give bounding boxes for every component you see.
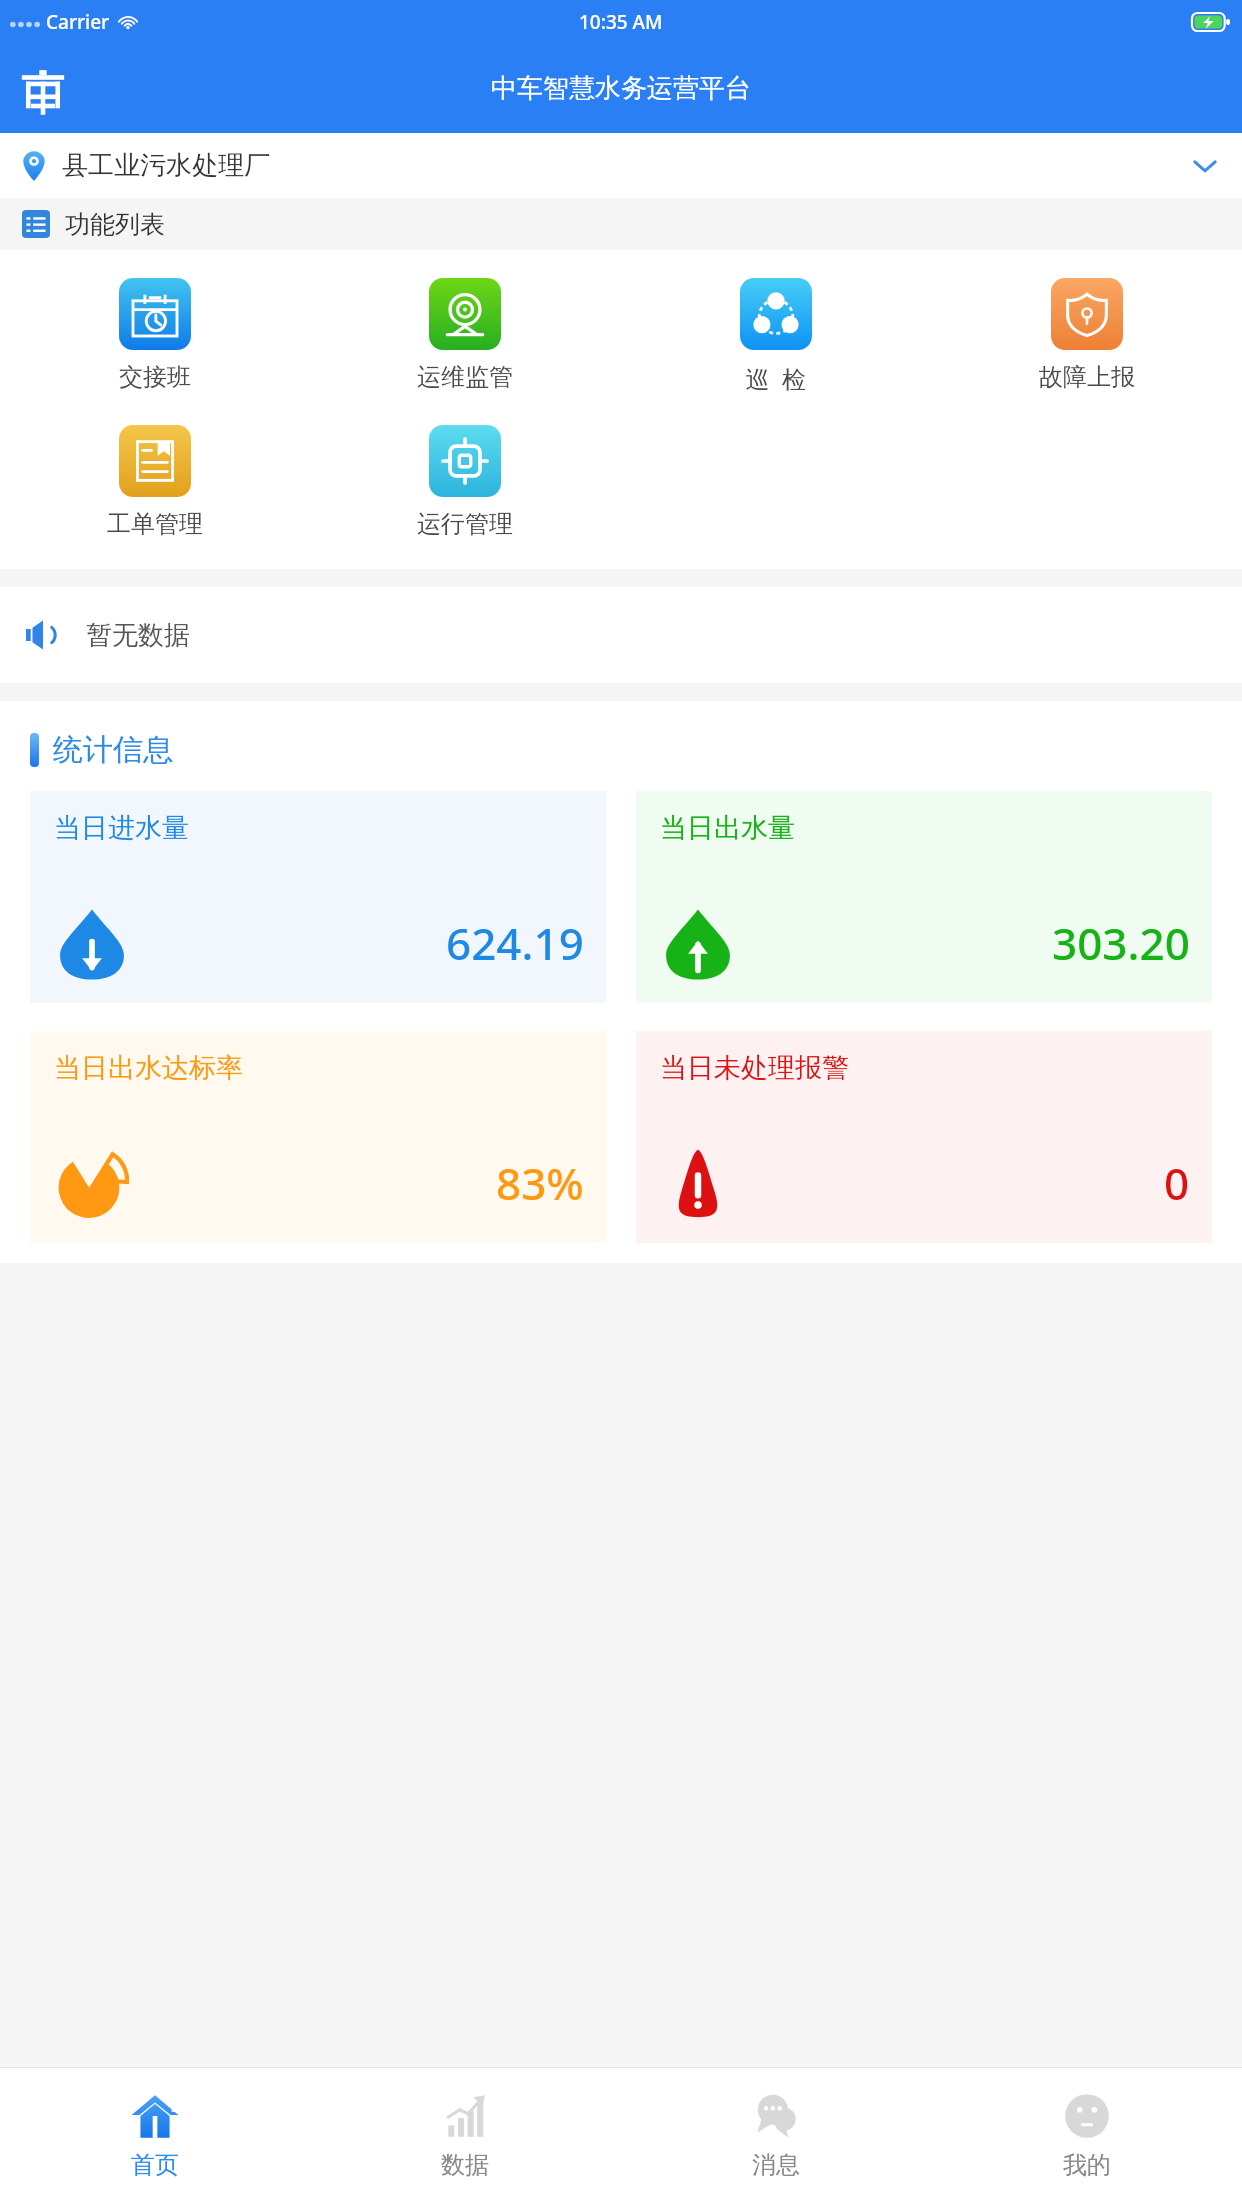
button[interactable]: 巡 检 [620, 274, 931, 399]
staticText: Carrier [46, 9, 110, 35]
staticText: 功能列表 [65, 209, 165, 240]
button[interactable]: 数据 [310, 2068, 620, 2208]
staticText: 运维监管 [417, 362, 513, 392]
staticText: 首页 [131, 2150, 179, 2180]
staticText: 县工业污水处理厂 [62, 149, 270, 182]
staticText: 交接班 [119, 362, 191, 392]
staticText: 303.20 [1052, 913, 1190, 973]
staticText: 当日出水量 [660, 811, 795, 845]
staticText: 工单管理 [107, 509, 203, 539]
staticText: 统计信息 [53, 731, 173, 769]
button[interactable]: 运维监管 [310, 274, 620, 396]
button[interactable]: 我的 [931, 2068, 1242, 2208]
staticText: 我的 [1063, 2150, 1111, 2180]
staticText: 当日出水达标率 [54, 1051, 243, 1085]
button[interactable]: 消息 [620, 2068, 931, 2208]
button[interactable]: 首页 [0, 2068, 310, 2208]
other: Logo [20, 66, 66, 112]
staticText: 暂无数据 [86, 619, 190, 652]
staticText: 当日未处理报警 [660, 1051, 849, 1085]
staticText: 消息 [752, 2150, 800, 2180]
button[interactable]: 故障上报 [931, 274, 1242, 396]
button[interactable]: 当日未处理报警 [636, 1031, 1212, 1243]
button[interactable]: 交接班 [0, 274, 310, 396]
staticText: 83% [496, 1153, 584, 1213]
staticText: 10:35 AM [579, 9, 663, 35]
staticText: 0 [1164, 1153, 1190, 1213]
button[interactable]: 当日出水达标率 [30, 1031, 606, 1243]
staticText: 当日进水量 [54, 811, 189, 845]
button[interactable]: 工单管理 [0, 421, 310, 543]
staticText: 624.19 [446, 913, 584, 973]
button[interactable]: 县工业污水处理厂 [0, 133, 1242, 198]
staticText: 运行管理 [417, 509, 513, 539]
button[interactable]: 运行管理 [310, 421, 620, 543]
staticText: 数据 [441, 2150, 489, 2180]
button[interactable]: 暂无数据 [0, 587, 1242, 683]
staticText: 中车智慧水务运营平台 [491, 72, 751, 105]
button[interactable]: 当日出水量 [636, 791, 1212, 1003]
button[interactable]: 当日进水量 [30, 791, 606, 1003]
staticText: 故障上报 [1039, 362, 1135, 392]
staticText: 巡 检 [745, 362, 806, 395]
